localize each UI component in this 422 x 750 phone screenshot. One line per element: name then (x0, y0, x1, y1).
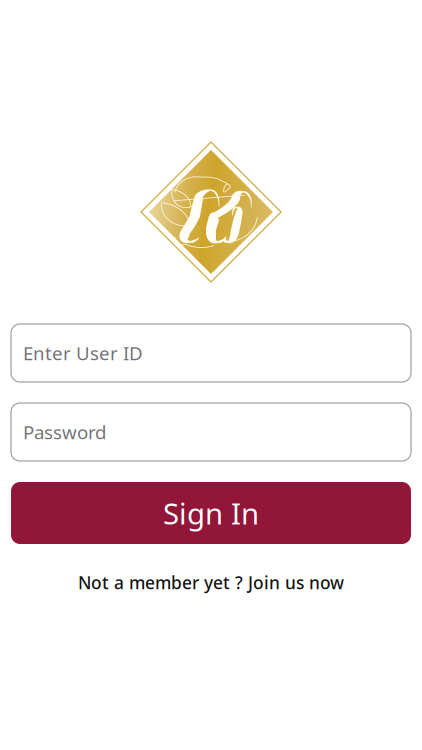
staticText: Not a member yet ? Join us now (78, 571, 344, 594)
button[interactable]: Sign In (11, 482, 411, 544)
staticText: Sign In (163, 493, 259, 532)
staticText: Enter User ID (23, 341, 143, 365)
staticText: Password (23, 420, 106, 444)
button[interactable]: Not a member yet ? Join us now (78, 571, 344, 594)
